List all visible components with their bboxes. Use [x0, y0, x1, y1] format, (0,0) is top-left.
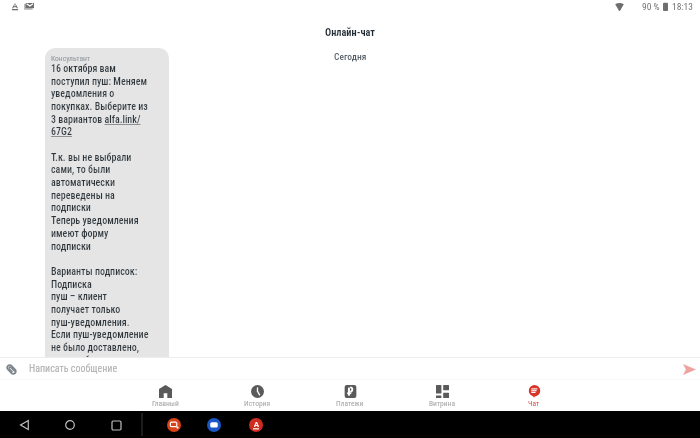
staticText: Чат	[528, 399, 540, 408]
staticText: Если пуш-уведомление	[51, 329, 149, 341]
button[interactable]: Витрина	[414, 380, 470, 411]
staticText: 67G2	[51, 126, 72, 138]
staticText: 3 вариантов alfa.link/	[51, 114, 141, 126]
staticText: Витрина	[429, 399, 456, 408]
other: Keyboard language	[12, 3, 18, 10]
staticText: Сегодня	[334, 51, 367, 62]
staticText: имеют форму	[51, 228, 109, 240]
staticText: Платежи	[336, 399, 364, 408]
staticText: Теперь уведомления	[51, 215, 139, 227]
staticText: подписки	[51, 241, 91, 253]
other: Mail	[24, 3, 34, 9]
staticText: 90 %	[642, 1, 660, 12]
button[interactable]: Keyboard	[205, 416, 223, 434]
staticText: покупках. Выберите из	[51, 101, 148, 113]
staticText: сами, то были	[51, 164, 111, 176]
staticText: смс-сообщение	[51, 355, 117, 357]
button[interactable]: Language	[247, 416, 265, 434]
button[interactable]: Home	[60, 415, 80, 435]
staticText: Консультант	[51, 54, 91, 63]
staticText: Т.к. вы не выбрали	[51, 152, 132, 164]
staticText: уведомления о	[51, 88, 115, 100]
staticText: 16 октября вам	[51, 63, 116, 75]
staticText: пуш-уведомления.	[51, 317, 130, 329]
button[interactable]: Back	[14, 415, 34, 435]
button[interactable]: Главный	[137, 380, 193, 411]
button[interactable]: Screen cast	[165, 416, 183, 434]
staticText: получает только	[51, 304, 121, 316]
other: Wi-Fi	[615, 3, 624, 11]
staticText: Варианты подписок:	[51, 266, 138, 278]
staticText: переведены на	[51, 190, 115, 202]
staticText: Главный	[152, 399, 179, 408]
button[interactable]: Recent apps	[106, 415, 126, 435]
staticText: подписки	[51, 202, 91, 214]
staticText: не было доставлено,	[51, 342, 139, 354]
button[interactable]: Чат	[506, 380, 562, 411]
button[interactable]: История	[229, 380, 285, 411]
staticText: Написать сообщение	[29, 363, 118, 375]
staticText: 18:13	[672, 1, 693, 12]
button[interactable]: Send	[678, 358, 700, 380]
button[interactable]: Консультант	[45, 48, 169, 357]
staticText: автоматически	[51, 177, 115, 189]
staticText: A	[254, 419, 259, 429]
staticText: пуш – клиент	[51, 291, 108, 303]
staticText: Онлайн-чат	[325, 26, 375, 38]
button[interactable]: Attach file	[0, 358, 22, 380]
staticText: История	[244, 399, 271, 408]
staticText: Подписка	[51, 279, 92, 291]
staticText: поступил пуш: Меняем	[51, 76, 147, 88]
button[interactable]: Платежи	[322, 380, 378, 411]
